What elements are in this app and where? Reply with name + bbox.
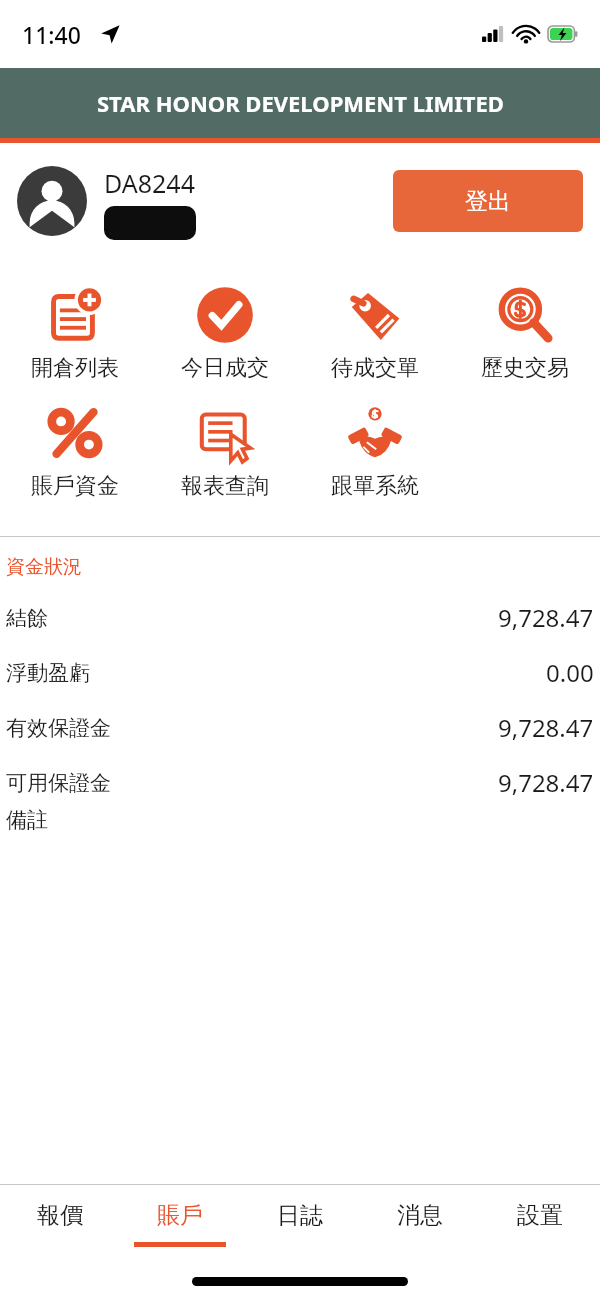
staticText: DA8244: [104, 166, 195, 200]
staticText: 賬戶: [157, 1201, 203, 1230]
button[interactable]: 日誌: [240, 1185, 360, 1263]
button[interactable]: 設置: [480, 1185, 600, 1263]
other: 待成交單: [346, 286, 404, 344]
staticText: 資金狀況: [6, 555, 82, 579]
staticText: 開倉列表: [31, 354, 119, 382]
staticText: 歷史交易: [481, 354, 569, 382]
other: 歷史交易: [496, 286, 554, 344]
staticText: 有效保證金: [6, 715, 111, 741]
staticText: 備註: [6, 807, 48, 833]
other: 報表查詢: [196, 404, 254, 462]
button[interactable]: 今日成交: [150, 286, 300, 382]
staticText: 跟單系統: [331, 472, 419, 500]
button[interactable]: 報表查詢: [150, 404, 300, 500]
button[interactable]: 歷史交易: [450, 286, 600, 382]
staticText: 可用保證金: [6, 770, 111, 796]
staticText: 賬戶資金: [31, 472, 119, 500]
staticText: 9,728.47: [498, 601, 594, 634]
staticText: 待成交單: [331, 354, 419, 382]
button[interactable]: 賬戶資金: [0, 404, 150, 500]
button[interactable]: 跟單系統: [300, 404, 450, 500]
staticText: 設置: [517, 1201, 563, 1230]
staticText: 9,728.47: [498, 766, 594, 799]
button[interactable]: 待成交單: [300, 286, 450, 382]
other: 賬戶資金: [46, 404, 104, 462]
staticText: 報價: [37, 1201, 83, 1230]
staticText: 0.00: [546, 656, 594, 689]
other: 跟單系統: [346, 404, 404, 462]
other: 今日成交: [196, 286, 254, 344]
staticText: 消息: [397, 1201, 443, 1230]
staticText: STAR HONOR DEVELOPMENT LIMITED: [97, 88, 504, 118]
button[interactable]: 消息: [360, 1185, 480, 1263]
staticText: 結餘: [6, 605, 48, 631]
staticText: 日誌: [277, 1201, 323, 1230]
staticText: 9,728.47: [498, 711, 594, 744]
staticText: 登出: [465, 187, 511, 216]
staticText: 報表查詢: [181, 472, 269, 500]
staticText: 浮動盈虧: [6, 660, 90, 686]
staticText: 今日成交: [181, 354, 269, 382]
button[interactable]: 報價: [0, 1185, 120, 1263]
button[interactable]: 賬戶: [120, 1185, 240, 1263]
button[interactable]: 開倉列表: [0, 286, 150, 382]
staticText: 11:40: [22, 19, 81, 50]
other: 開倉列表: [46, 286, 104, 344]
button[interactable]: 登出: [393, 170, 583, 232]
